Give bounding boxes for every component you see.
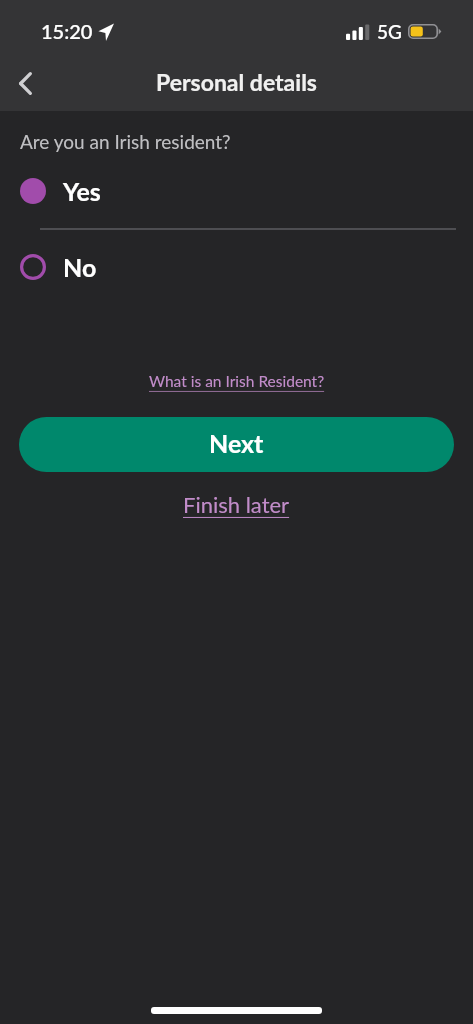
staticText: 5G xyxy=(377,20,402,43)
button[interactable]: Yes xyxy=(0,163,473,219)
button[interactable]: Back xyxy=(1,59,49,107)
button[interactable]: Finish later xyxy=(173,483,300,525)
button[interactable]: No xyxy=(0,239,473,295)
staticText: Are you an Irish resident? xyxy=(20,130,231,153)
staticText: Yes xyxy=(63,176,101,206)
staticText: Personal details xyxy=(0,68,473,96)
button[interactable]: Next xyxy=(19,417,454,472)
staticText: 15:20 xyxy=(41,19,93,43)
staticText: Next xyxy=(209,428,264,458)
button[interactable]: What is an Irish Resident? xyxy=(141,366,333,397)
staticText: No xyxy=(63,252,97,282)
